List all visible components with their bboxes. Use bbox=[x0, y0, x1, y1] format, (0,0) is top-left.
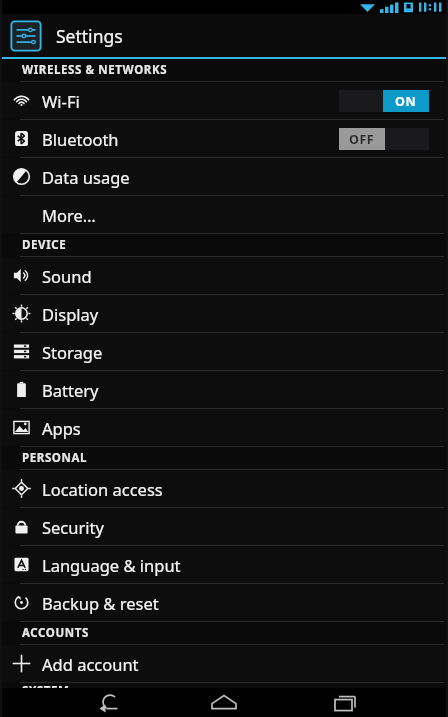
staticText: WIRELESS & NETWORKS bbox=[22, 62, 168, 78]
staticText: ON bbox=[395, 93, 417, 110]
button[interactable]: Toggle, off bbox=[339, 128, 429, 150]
staticText: DEVICE bbox=[22, 237, 67, 253]
button[interactable]: Wi-Fi bbox=[0, 82, 448, 119]
button[interactable]: Apps bbox=[0, 409, 448, 446]
button[interactable]: Battery bbox=[0, 371, 448, 408]
button[interactable]: Add account bbox=[0, 645, 448, 682]
staticText: Storage bbox=[42, 341, 103, 363]
staticText: Location access bbox=[42, 478, 163, 500]
button[interactable]: Language & input bbox=[0, 546, 448, 583]
staticText: Data usage bbox=[42, 166, 130, 188]
staticText: Apps bbox=[42, 417, 81, 439]
button[interactable]: More… bbox=[0, 196, 448, 233]
button[interactable]: Security bbox=[0, 508, 448, 545]
staticText: Security bbox=[42, 516, 104, 538]
staticText: PERSONAL bbox=[22, 450, 88, 466]
staticText: ACCOUNTS bbox=[22, 625, 89, 641]
staticText: OFF bbox=[349, 131, 375, 148]
button[interactable]: Sound bbox=[0, 257, 448, 294]
staticText: Display bbox=[42, 303, 99, 325]
staticText: More… bbox=[42, 204, 96, 226]
button[interactable]: Backup & reset bbox=[0, 584, 448, 621]
staticText: Battery bbox=[42, 379, 99, 401]
staticText: Bluetooth bbox=[42, 128, 119, 150]
staticText: Add account bbox=[42, 653, 139, 675]
button[interactable]: Location access bbox=[0, 470, 448, 507]
button[interactable]: Bluetooth bbox=[0, 120, 448, 157]
button[interactable]: Display bbox=[0, 295, 448, 332]
staticText: Wi-Fi bbox=[42, 90, 80, 112]
staticText: Backup & reset bbox=[42, 592, 159, 614]
staticText: Language & input bbox=[42, 554, 181, 576]
staticText: Sound bbox=[42, 265, 92, 287]
staticText: SYSTEM bbox=[22, 683, 70, 688]
staticText: Settings bbox=[56, 24, 123, 48]
button[interactable]: Settings app icon bbox=[9, 19, 43, 53]
button[interactable]: Storage bbox=[0, 333, 448, 370]
button[interactable]: Toggle, on bbox=[339, 90, 429, 112]
button[interactable]: Data usage bbox=[0, 158, 448, 195]
